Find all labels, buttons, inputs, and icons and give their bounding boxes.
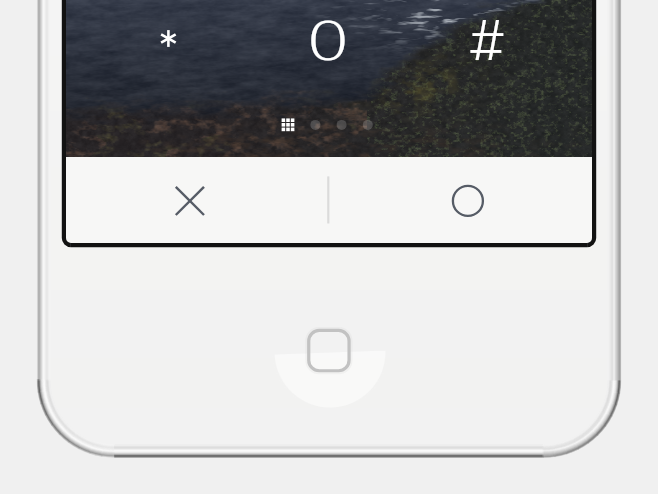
button[interactable]: Grid xyxy=(270,106,308,144)
button[interactable]: Capture xyxy=(428,162,508,240)
staticText: # xyxy=(469,0,505,60)
button[interactable]: Home xyxy=(303,318,357,384)
button[interactable]: Filters xyxy=(308,0,348,78)
button[interactable]: Effects xyxy=(149,0,189,78)
button[interactable]: Tags xyxy=(467,0,507,78)
button[interactable]: Cancel xyxy=(150,162,230,240)
staticText: O xyxy=(308,1,348,63)
